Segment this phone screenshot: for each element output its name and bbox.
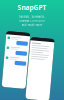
staticText: and much more: [21, 23, 42, 27]
staticText: SnapGPT: [17, 3, 46, 12]
staticText: Grammar Correction: [19, 19, 45, 22]
staticText: Translate, Summarize,: [18, 15, 45, 18]
